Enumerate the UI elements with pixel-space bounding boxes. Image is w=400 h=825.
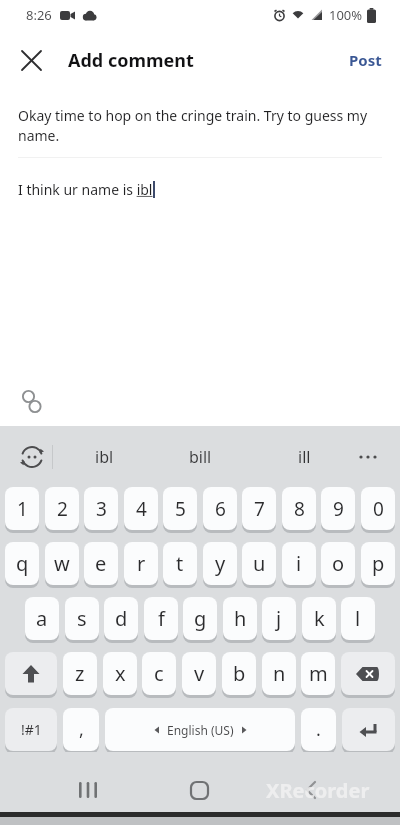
button[interactable]: bill (176, 446, 224, 468)
button[interactable]: k (302, 597, 336, 640)
staticText: Post (349, 50, 382, 70)
button[interactable]: p (361, 542, 395, 585)
button[interactable]: j (262, 597, 296, 640)
staticText: Okay time to hop on the cringe train. Tr… (18, 106, 368, 146)
button[interactable]: ibl (80, 446, 128, 468)
staticText: x (115, 660, 126, 687)
staticText: , (79, 717, 84, 742)
button[interactable] (14, 384, 50, 420)
button[interactable] (342, 708, 395, 751)
button[interactable]: t (163, 542, 197, 585)
button[interactable]: z (63, 652, 97, 695)
staticText: . (316, 717, 321, 742)
button[interactable]: 0 (361, 487, 395, 530)
button[interactable]: l (341, 597, 375, 640)
button[interactable]: a (25, 597, 59, 640)
button[interactable]: m (301, 652, 335, 695)
button[interactable] (10, 39, 52, 81)
button[interactable]: 3 (84, 487, 118, 530)
button[interactable]: , (63, 708, 99, 751)
staticText: 6 (215, 496, 226, 522)
button[interactable]: w (45, 542, 79, 585)
staticText: XRecorder (266, 777, 370, 804)
button[interactable]: !#1 (5, 708, 57, 751)
staticText: g (194, 605, 207, 632)
staticText: u (253, 550, 266, 577)
button[interactable]: s (65, 597, 99, 640)
staticText: n (273, 660, 286, 687)
button[interactable]: English (US) (105, 708, 295, 751)
button[interactable]: d (104, 597, 138, 640)
staticText: v (194, 660, 205, 687)
staticText: z (75, 660, 85, 687)
staticText: h (234, 605, 247, 632)
button[interactable]: 9 (321, 487, 355, 530)
button[interactable]: . (301, 708, 336, 751)
staticText: s (77, 605, 87, 632)
button[interactable]: 8 (282, 487, 316, 530)
button[interactable] (12, 437, 52, 477)
staticText: m (309, 660, 328, 687)
button[interactable]: q (5, 542, 39, 585)
button[interactable]: u (242, 542, 276, 585)
button[interactable]: f (144, 597, 178, 640)
staticText: 4 (136, 496, 147, 522)
staticText: o (332, 550, 345, 577)
button[interactable]: 6 (203, 487, 237, 530)
button[interactable]: e (84, 542, 118, 585)
staticText: 3 (96, 496, 107, 522)
staticText: r (137, 550, 146, 577)
button[interactable]: y (203, 542, 237, 585)
staticText: 0 (373, 496, 384, 522)
button[interactable]: n (262, 652, 296, 695)
button[interactable] (352, 455, 384, 459)
staticText: 100% (329, 6, 363, 24)
button[interactable]: ill (280, 446, 328, 468)
button[interactable]: i (282, 542, 316, 585)
button[interactable]: o (321, 542, 355, 585)
staticText: i (296, 550, 302, 577)
staticText: !#1 (21, 720, 42, 739)
staticText: 7 (254, 496, 265, 522)
button[interactable]: Post (341, 42, 390, 78)
button[interactable]: x (103, 652, 137, 695)
staticText: bill (189, 446, 212, 468)
staticText: d (115, 605, 128, 632)
button[interactable]: h (223, 597, 257, 640)
button[interactable]: 1 (5, 487, 39, 530)
staticText: k (314, 605, 325, 632)
staticText: q (16, 550, 29, 577)
staticText: l (355, 605, 361, 632)
staticText: 2 (57, 496, 68, 522)
button[interactable] (5, 652, 57, 695)
button[interactable]: g (183, 597, 217, 640)
button[interactable]: v (182, 652, 216, 695)
button[interactable]: 7 (242, 487, 276, 530)
button[interactable] (341, 652, 395, 695)
button[interactable]: 2 (45, 487, 79, 530)
button[interactable]: b (222, 652, 256, 695)
staticText: t (176, 550, 184, 577)
staticText: p (372, 550, 385, 577)
staticText: b (233, 660, 246, 687)
staticText: w (54, 550, 70, 577)
staticText: 8 (294, 496, 305, 522)
staticText: a (36, 605, 48, 632)
staticText: y (215, 550, 226, 577)
button[interactable] (181, 772, 217, 808)
staticText: 8:26 (26, 6, 52, 24)
staticText: 1 (17, 496, 28, 522)
staticText: ill (298, 446, 311, 468)
staticText: 5 (175, 496, 186, 522)
staticText: I think ur name is ibl (18, 180, 153, 199)
button[interactable]: c (142, 652, 176, 695)
staticText: Add comment (68, 48, 194, 73)
staticText: e (95, 550, 107, 577)
button[interactable]: r (124, 542, 158, 585)
staticText: j (276, 605, 282, 632)
staticText: English (US) (167, 722, 234, 738)
button[interactable] (70, 772, 106, 808)
button[interactable]: 5 (163, 487, 197, 530)
staticText: 9 (333, 496, 344, 522)
button[interactable]: 4 (124, 487, 158, 530)
